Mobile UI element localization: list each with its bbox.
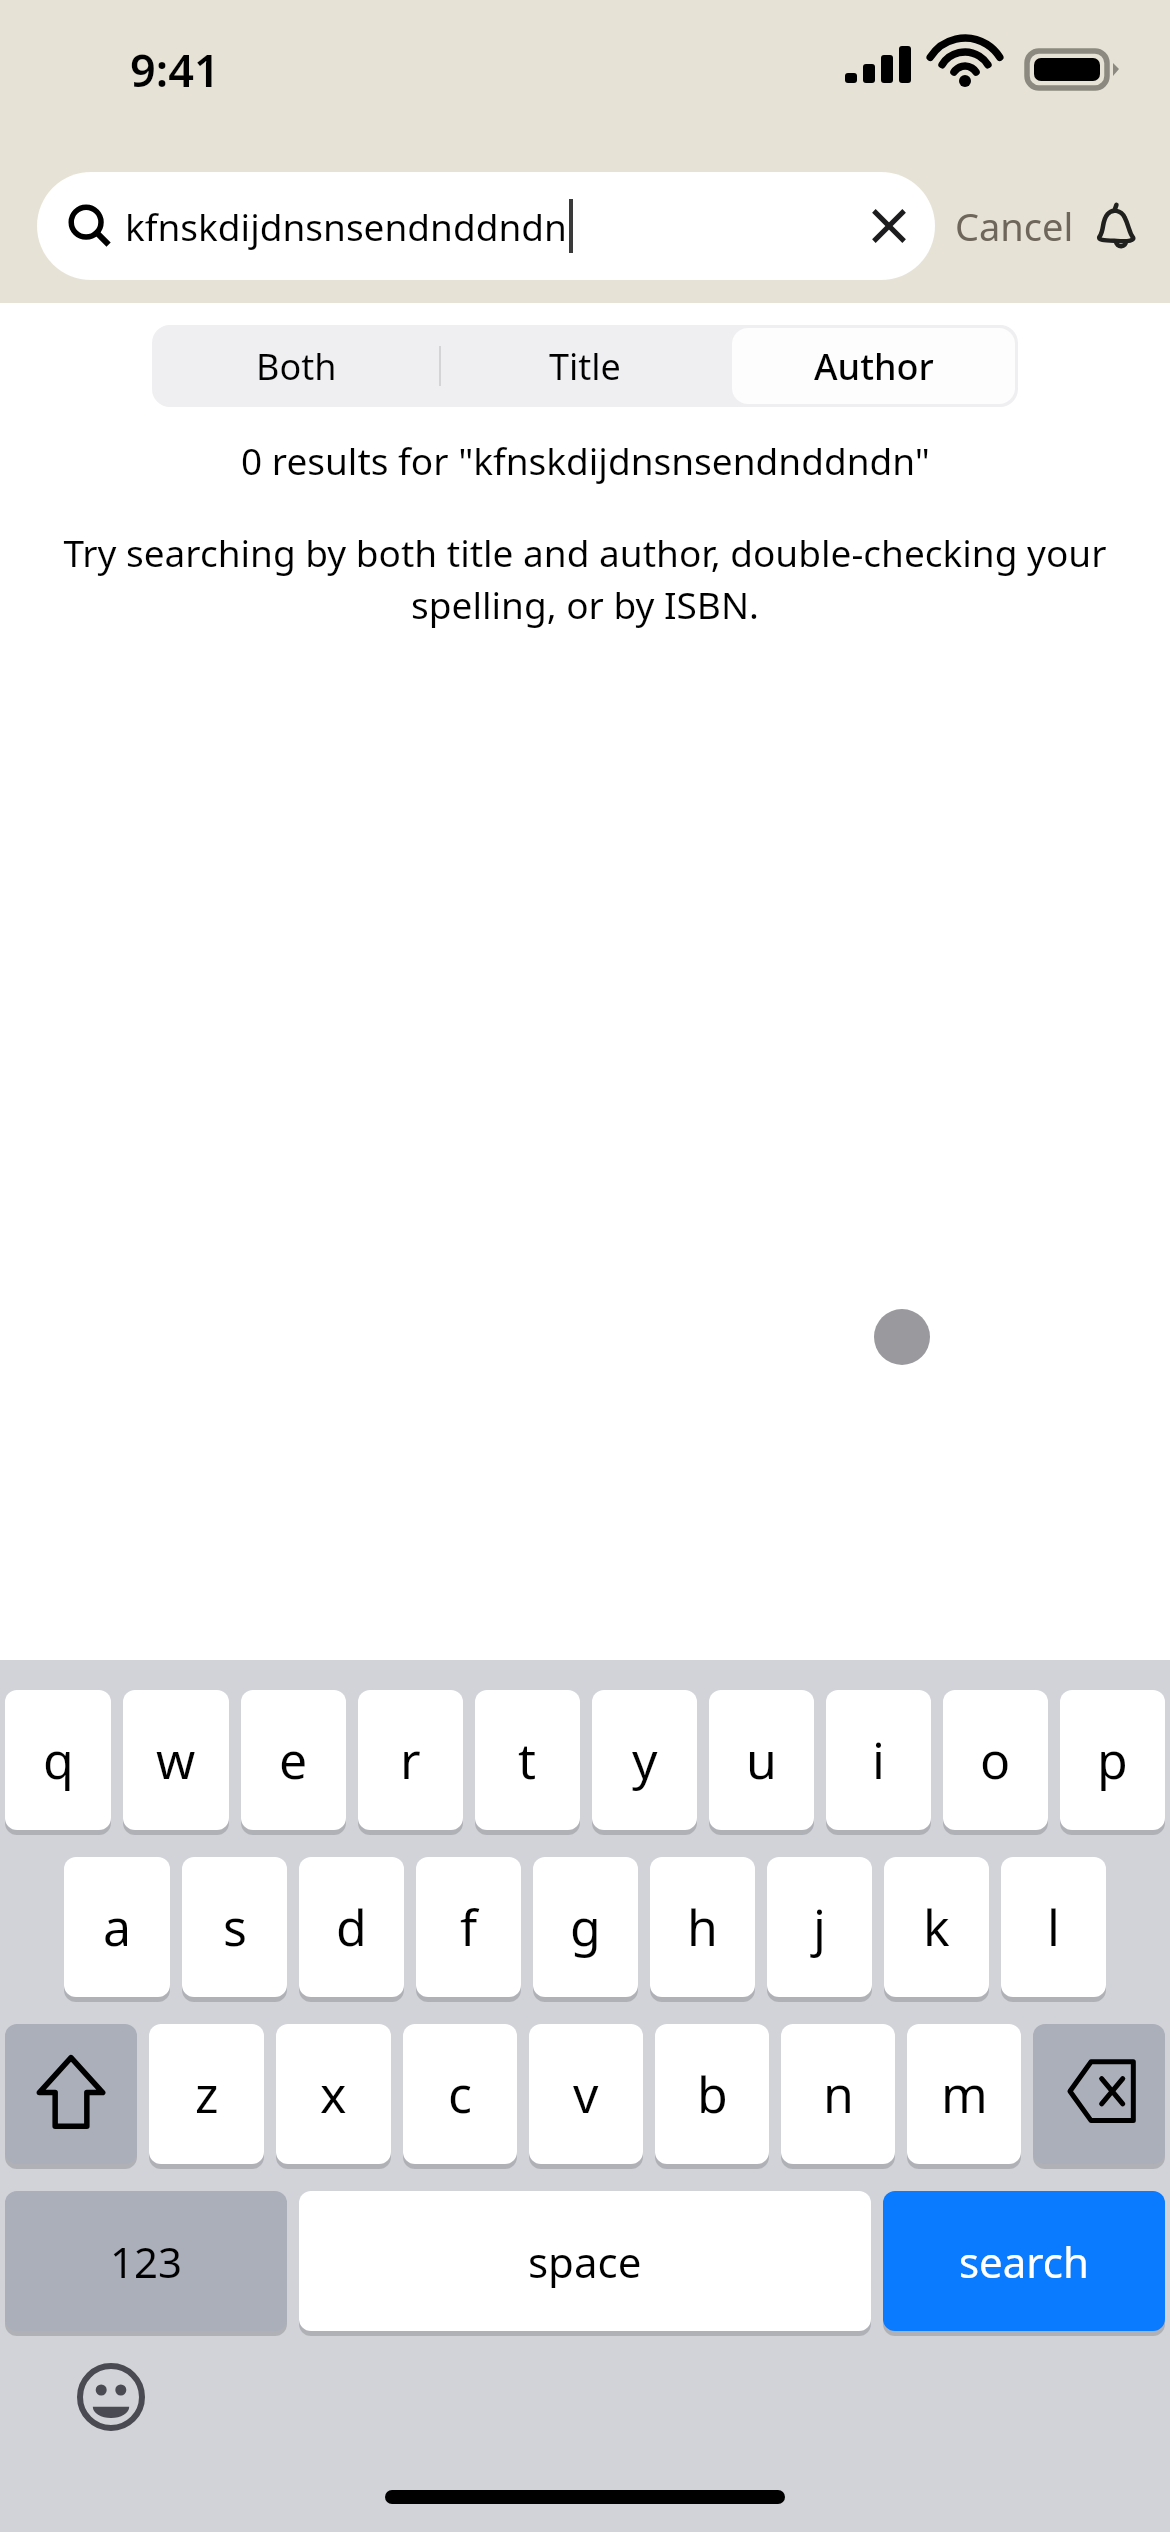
button[interactable]: g xyxy=(533,1857,638,1997)
button[interactable]: Clear text xyxy=(861,198,917,254)
button[interactable]: v xyxy=(529,2024,643,2164)
button[interactable]: j xyxy=(767,1857,872,1997)
button[interactable]: Emoji xyxy=(76,2362,146,2432)
button[interactable]: Notifications xyxy=(1086,197,1144,255)
button[interactable]: q xyxy=(5,1690,111,1830)
button[interactable]: Author xyxy=(732,328,1015,404)
button[interactable]: n xyxy=(781,2024,895,2164)
button[interactable]: w xyxy=(123,1690,229,1830)
staticText: Cancel xyxy=(955,200,1074,252)
staticText: p xyxy=(1097,1726,1128,1794)
staticText: Try searching by both title and author, … xyxy=(40,527,1130,630)
staticText: c xyxy=(448,2060,472,2128)
button[interactable]: Title xyxy=(443,328,726,404)
staticText: e xyxy=(279,1726,308,1794)
staticText: i xyxy=(872,1726,885,1794)
button[interactable]: z xyxy=(149,2024,264,2164)
staticText: d xyxy=(336,1893,367,1961)
staticText: t xyxy=(518,1726,537,1794)
button[interactable]: l xyxy=(1001,1857,1106,1997)
button[interactable]: o xyxy=(943,1690,1048,1830)
button[interactable]: d xyxy=(299,1857,404,1997)
button[interactable]: i xyxy=(826,1690,931,1830)
button[interactable]: Shift xyxy=(5,2024,137,2164)
staticText: o xyxy=(980,1726,1011,1794)
staticText: 0 results for "kfnskdijdnsnsendnddndn" xyxy=(241,435,930,485)
button[interactable]: space xyxy=(299,2191,871,2331)
staticText: x xyxy=(320,2060,347,2128)
staticText: 9:41 xyxy=(130,39,220,100)
staticText: f xyxy=(460,1893,478,1961)
staticText: Title xyxy=(549,342,621,391)
button[interactable]: e xyxy=(241,1690,346,1830)
button[interactable]: search xyxy=(883,2191,1165,2331)
staticText: m xyxy=(941,2060,988,2128)
staticText: space xyxy=(528,2233,642,2290)
button[interactable]: a xyxy=(64,1857,170,1997)
button[interactable]: y xyxy=(592,1690,697,1830)
button[interactable]: b xyxy=(655,2024,769,2164)
staticText: y xyxy=(632,1726,658,1794)
staticText: u xyxy=(746,1726,777,1794)
staticText: q xyxy=(43,1726,74,1794)
staticText: 123 xyxy=(110,2233,183,2290)
button[interactable]: kfnskdijdnsnsendnddndn xyxy=(37,172,935,280)
button[interactable]: t xyxy=(475,1690,580,1830)
button[interactable]: Cancel xyxy=(955,200,1074,252)
staticText: s xyxy=(223,1893,247,1961)
button[interactable]: Both xyxy=(155,328,437,404)
staticText: k xyxy=(923,1893,950,1961)
button[interactable]: Backspace xyxy=(1033,2024,1165,2164)
staticText: n xyxy=(823,2060,854,2128)
button[interactable]: c xyxy=(403,2024,517,2164)
button[interactable]: 123 xyxy=(5,2191,287,2331)
staticText: l xyxy=(1047,1893,1060,1961)
button[interactable]: u xyxy=(709,1690,814,1830)
staticText: v xyxy=(573,2060,599,2128)
button[interactable]: x xyxy=(276,2024,391,2164)
staticText: a xyxy=(103,1893,132,1961)
staticText: j xyxy=(813,1893,826,1961)
button[interactable]: f xyxy=(416,1857,521,1997)
staticText: g xyxy=(570,1893,601,1961)
staticText: r xyxy=(400,1726,421,1794)
button[interactable]: m xyxy=(907,2024,1021,2164)
staticText: z xyxy=(195,2060,219,2128)
button[interactable]: r xyxy=(358,1690,463,1830)
button[interactable]: h xyxy=(650,1857,755,1997)
button[interactable]: p xyxy=(1060,1690,1165,1830)
staticText: kfnskdijdnsnsendnddndn xyxy=(125,201,567,251)
staticText: search xyxy=(959,2233,1089,2290)
staticText: b xyxy=(697,2060,728,2128)
button[interactable]: s xyxy=(182,1857,287,1997)
staticText: Both xyxy=(256,342,337,391)
button[interactable]: k xyxy=(884,1857,989,1997)
staticText: w xyxy=(156,1726,196,1794)
staticText: h xyxy=(687,1893,718,1961)
staticText: Author xyxy=(814,342,934,391)
